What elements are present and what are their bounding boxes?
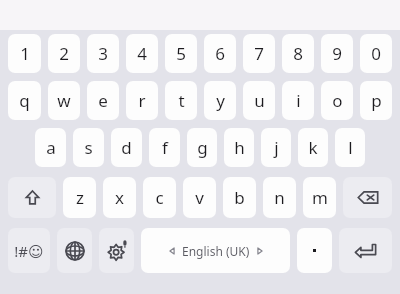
button[interactable]: 8 [282,34,314,73]
staticText: x [115,186,124,209]
staticText: r [138,89,146,112]
staticText: b [234,186,245,209]
button[interactable]: j [261,128,291,167]
button[interactable]: c [143,177,176,218]
button[interactable]: f [149,128,180,167]
staticText: s [84,136,93,159]
button[interactable]: a [35,128,66,167]
button[interactable]: Enter [339,228,392,273]
staticText: English (UK) [182,243,250,259]
staticText: 1 [20,42,30,65]
button[interactable]: Change language [57,228,92,273]
button[interactable]: 6 [204,34,236,73]
button[interactable]: Backspace [343,177,392,218]
button[interactable]: x [103,177,136,218]
button[interactable]: n [263,177,296,218]
staticText: u [254,89,265,112]
button[interactable]: v [183,177,216,218]
staticText: t [178,89,185,112]
button[interactable]: z [63,177,96,218]
button[interactable]: i [282,81,314,120]
staticText: o [332,89,343,112]
button[interactable]: Space, English (UK) [141,228,290,273]
button[interactable]: l [335,128,365,167]
button[interactable]: r [126,81,158,120]
button[interactable]: Settings [99,228,134,273]
button[interactable]: 7 [243,34,275,73]
button[interactable]: b [223,177,256,218]
staticText: 7 [254,42,264,65]
button[interactable] [297,228,332,273]
button[interactable]: h [224,128,254,167]
button[interactable]: g [187,128,217,167]
staticText: v [195,186,204,209]
staticText: n [274,186,285,209]
button[interactable]: 1 [8,34,41,73]
staticText: p [371,89,382,112]
staticText: z [76,186,84,209]
staticText: m [312,186,328,209]
button[interactable]: q [8,81,41,120]
button[interactable]: Symbols and emoji [8,228,50,273]
staticText: g [197,136,208,159]
staticText: 4 [137,42,147,65]
button[interactable]: 5 [165,34,197,73]
staticText: 8 [293,42,303,65]
staticText: f [162,136,168,159]
button[interactable]: Shift [8,177,56,218]
staticText: a [46,136,56,159]
button[interactable]: k [298,128,328,167]
button[interactable]: 0 [360,34,392,73]
button[interactable]: m [303,177,336,218]
staticText: d [121,136,132,159]
button[interactable]: d [111,128,142,167]
staticText: 0 [371,42,381,65]
staticText: c [155,186,164,209]
staticText: q [19,89,30,112]
staticText: k [308,136,318,159]
staticText: h [234,136,245,159]
staticText: e [98,89,108,112]
button[interactable]: 9 [321,34,353,73]
staticText: l [348,136,353,159]
staticText: 6 [215,42,225,65]
button[interactable]: e [87,81,119,120]
staticText: w [57,89,71,112]
button[interactable]: w [48,81,80,120]
staticText: y [216,89,225,112]
button[interactable]: y [204,81,236,120]
button[interactable]: 4 [126,34,158,73]
staticText: 2 [59,42,69,65]
staticText: 5 [176,42,186,65]
button[interactable]: t [165,81,197,120]
button[interactable]: s [73,128,104,167]
staticText: 9 [332,42,342,65]
staticText: 3 [98,42,108,65]
staticText: !#☺ [14,241,44,261]
staticText: i [296,89,301,112]
button[interactable]: u [243,81,275,120]
button[interactable]: p [360,81,392,120]
button[interactable]: 3 [87,34,119,73]
staticText: j [274,136,279,159]
button[interactable]: o [321,81,353,120]
button[interactable]: 2 [48,34,80,73]
